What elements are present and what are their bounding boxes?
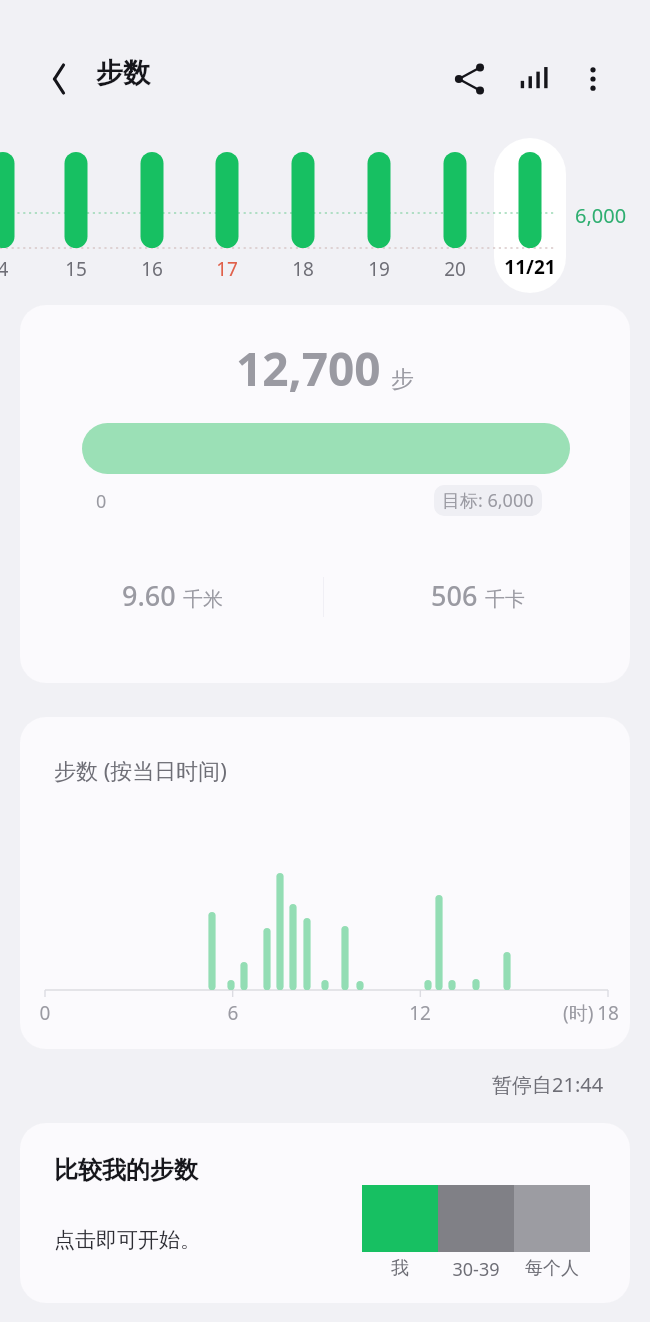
staticText: 9.60 — [122, 577, 176, 614]
staticText: 我 — [362, 1257, 438, 1280]
staticText: 12 — [390, 1000, 450, 1026]
button[interactable]: More options — [570, 56, 616, 102]
staticText: 点击即可开始。 — [54, 1227, 201, 1253]
staticText: 步数 (按当日时间) — [54, 755, 227, 785]
button[interactable]: Share — [446, 56, 492, 102]
staticText: 暂停自21:44 — [492, 1071, 604, 1098]
staticText: 18 — [273, 256, 333, 282]
button[interactable]: Back — [36, 56, 82, 102]
button[interactable]: 步数 (按当日时间) — [20, 717, 630, 1049]
staticText: 步数 — [96, 56, 150, 90]
staticText: 0 — [20, 1000, 75, 1026]
button[interactable]: Trends — [510, 56, 556, 102]
staticText: 目标: 6,000 — [442, 488, 534, 513]
staticText: 17 — [197, 256, 257, 282]
button[interactable]: 12,700 — [20, 305, 630, 683]
staticText: 12,700 — [236, 337, 381, 400]
staticText: 步 — [391, 365, 414, 394]
staticText: 19 — [349, 256, 409, 282]
staticText: 千卡 — [485, 587, 525, 612]
staticText: 6,000 — [575, 202, 627, 229]
staticText: 0 — [96, 489, 107, 514]
staticText: 506 — [431, 577, 478, 614]
staticText: 18 — [578, 1000, 630, 1026]
staticText: (时) — [563, 1000, 594, 1026]
staticText: 15 — [46, 256, 106, 282]
staticText: 千米 — [183, 587, 223, 612]
staticText: 4 — [0, 256, 33, 282]
staticText: 16 — [122, 256, 182, 282]
button[interactable] — [494, 138, 566, 293]
staticText: 6 — [203, 1000, 263, 1026]
staticText: 20 — [425, 256, 485, 282]
staticText: 每个人 — [514, 1257, 590, 1280]
staticText: 比较我的步数 — [54, 1155, 198, 1185]
button[interactable]: 比较我的步数 — [20, 1123, 630, 1303]
staticText: 30-39 — [438, 1257, 514, 1282]
staticText: 11/21 — [490, 254, 570, 280]
